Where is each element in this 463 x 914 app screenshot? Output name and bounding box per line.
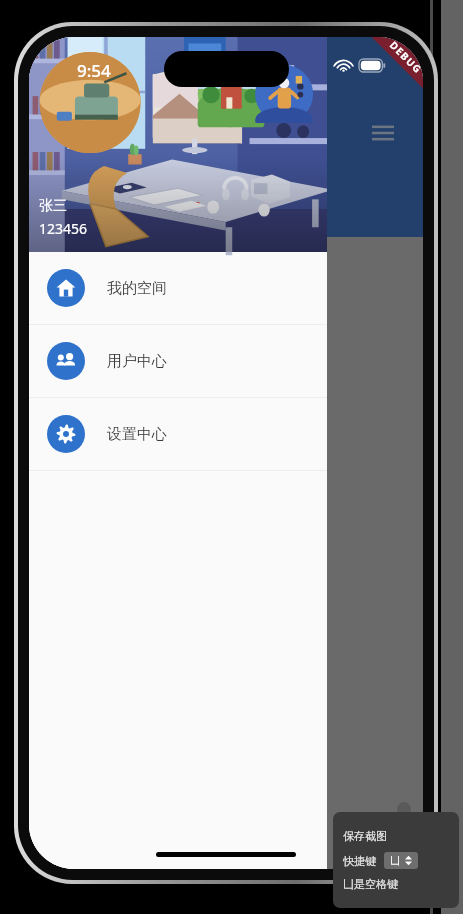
staticText: 123456 — [39, 219, 88, 238]
staticText: 9:54 — [77, 59, 111, 82]
button[interactable]: 设置中心 — [29, 398, 327, 470]
staticText: 用户中心 — [107, 352, 167, 371]
staticText: 凵 — [390, 854, 400, 867]
button[interactable]: Open navigation menu — [361, 111, 405, 155]
staticText: 凵是空格键 — [343, 877, 398, 891]
staticText: DEBUG — [387, 38, 423, 77]
button[interactable]: 凵 — [384, 852, 418, 869]
staticText: 设置中心 — [107, 425, 167, 444]
staticText: 张三 — [39, 197, 67, 215]
button[interactable]: 我的空间 — [29, 252, 327, 324]
button[interactable]: 用户中心 — [29, 325, 327, 397]
staticText: 保存截图 — [343, 829, 387, 843]
staticText: 快捷键 — [343, 854, 376, 868]
staticText: 我的空间 — [107, 279, 167, 298]
